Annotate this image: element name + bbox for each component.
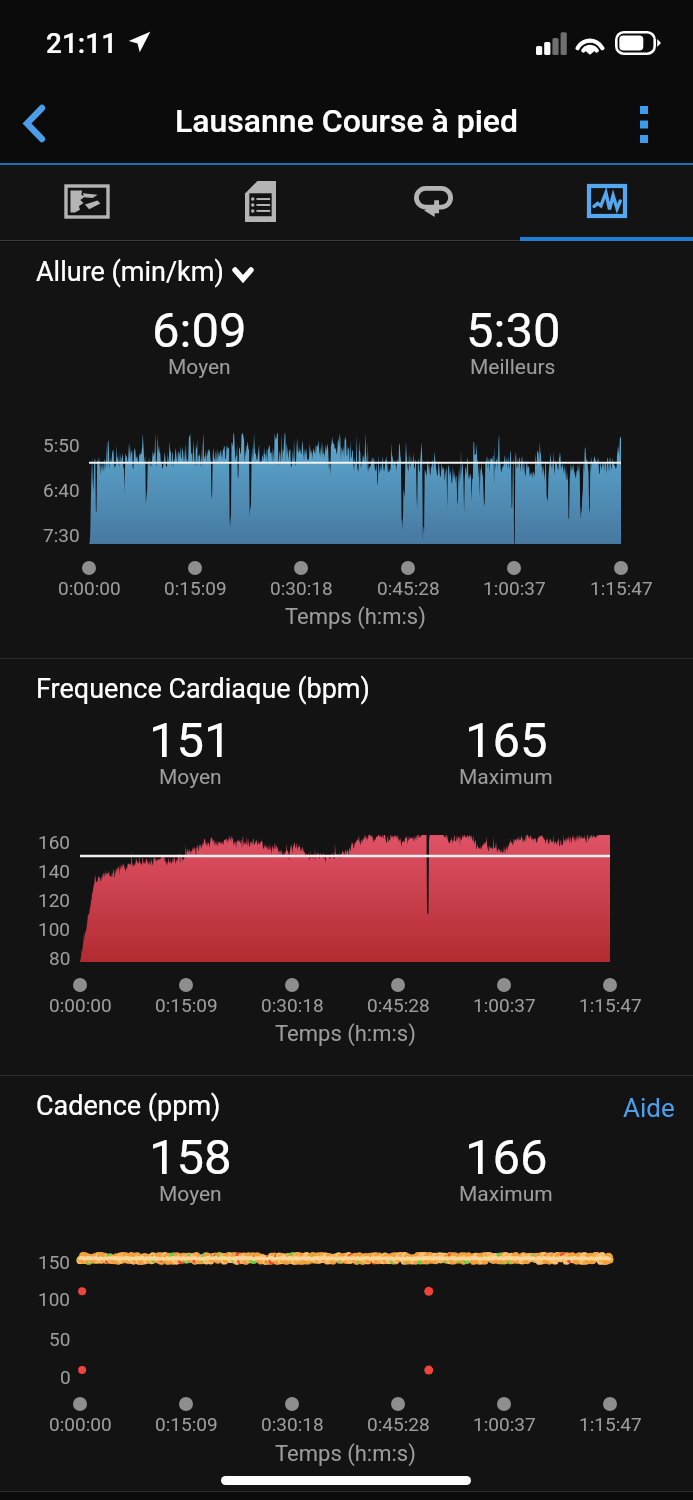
staticText: Allure (min/km) (36, 256, 224, 288)
button[interactable]: Details (174, 165, 347, 241)
button[interactable]: Laps (347, 165, 520, 241)
staticText: 6:40 (43, 479, 80, 501)
staticText: 140 (38, 860, 71, 882)
staticText: 7:30 (43, 524, 80, 546)
staticText: 1:00:37 (483, 577, 546, 599)
staticText: 120 (38, 889, 71, 911)
button[interactable]: Map (0, 165, 174, 241)
staticText: 5:30 (466, 302, 561, 359)
staticText: 5:50 (43, 434, 80, 456)
staticText: 1:15:47 (579, 1413, 642, 1435)
staticText: 0:45:28 (367, 994, 430, 1016)
staticText: Maximum (459, 1182, 553, 1207)
staticText: Moyen (168, 355, 231, 380)
staticText: Temps (h:m:s) (275, 1021, 416, 1047)
staticText: 100 (38, 918, 71, 940)
staticText: 1:00:37 (473, 1413, 536, 1435)
staticText: 0:30:18 (261, 994, 324, 1016)
staticText: 0:45:28 (367, 1413, 430, 1435)
button[interactable]: Aide (608, 1082, 690, 1134)
staticText: 0:15:09 (155, 1413, 218, 1435)
button[interactable]: Back (2, 92, 66, 154)
staticText: Temps (h:m:s) (285, 604, 426, 630)
staticText: 0:15:09 (155, 994, 218, 1016)
staticText: 1:00:37 (473, 994, 536, 1016)
staticText: 1:15:47 (590, 577, 653, 599)
staticText: 1:15:47 (579, 994, 642, 1016)
staticText: 158 (149, 1129, 232, 1186)
staticText: Cadence (ppm) (36, 1090, 221, 1122)
button[interactable]: More options (613, 94, 675, 154)
staticText: Moyen (159, 765, 222, 790)
staticText: 160 (38, 831, 71, 853)
staticText: 0:15:09 (164, 577, 227, 599)
staticText: 165 (465, 712, 548, 769)
staticText: 50 (49, 1328, 71, 1350)
staticText: Temps (h:m:s) (275, 1441, 416, 1467)
staticText: 21:11 (46, 27, 118, 60)
staticText: Maximum (459, 765, 553, 790)
staticText: 0:30:18 (261, 1413, 324, 1435)
staticText: 0:45:28 (377, 577, 440, 599)
staticText: 150 (38, 1251, 71, 1273)
staticText: Frequence Cardiaque (bpm) (36, 673, 370, 705)
staticText: 0:00:00 (49, 1413, 112, 1435)
staticText: Aide (623, 1093, 675, 1123)
button[interactable]: Charts (520, 165, 693, 241)
staticText: 0:30:18 (270, 577, 333, 599)
staticText: Lausanne Course à pied (175, 102, 518, 140)
staticText: 151 (149, 712, 232, 769)
staticText: 166 (465, 1129, 548, 1186)
staticText: Meilleurs (470, 355, 556, 380)
staticText: 0:00:00 (49, 994, 112, 1016)
staticText: 80 (49, 947, 71, 969)
staticText: Moyen (159, 1182, 222, 1207)
staticText: 0:00:00 (58, 577, 121, 599)
staticText: 100 (38, 1288, 71, 1310)
staticText: 6:09 (152, 302, 247, 359)
staticText: 0 (60, 1366, 71, 1388)
